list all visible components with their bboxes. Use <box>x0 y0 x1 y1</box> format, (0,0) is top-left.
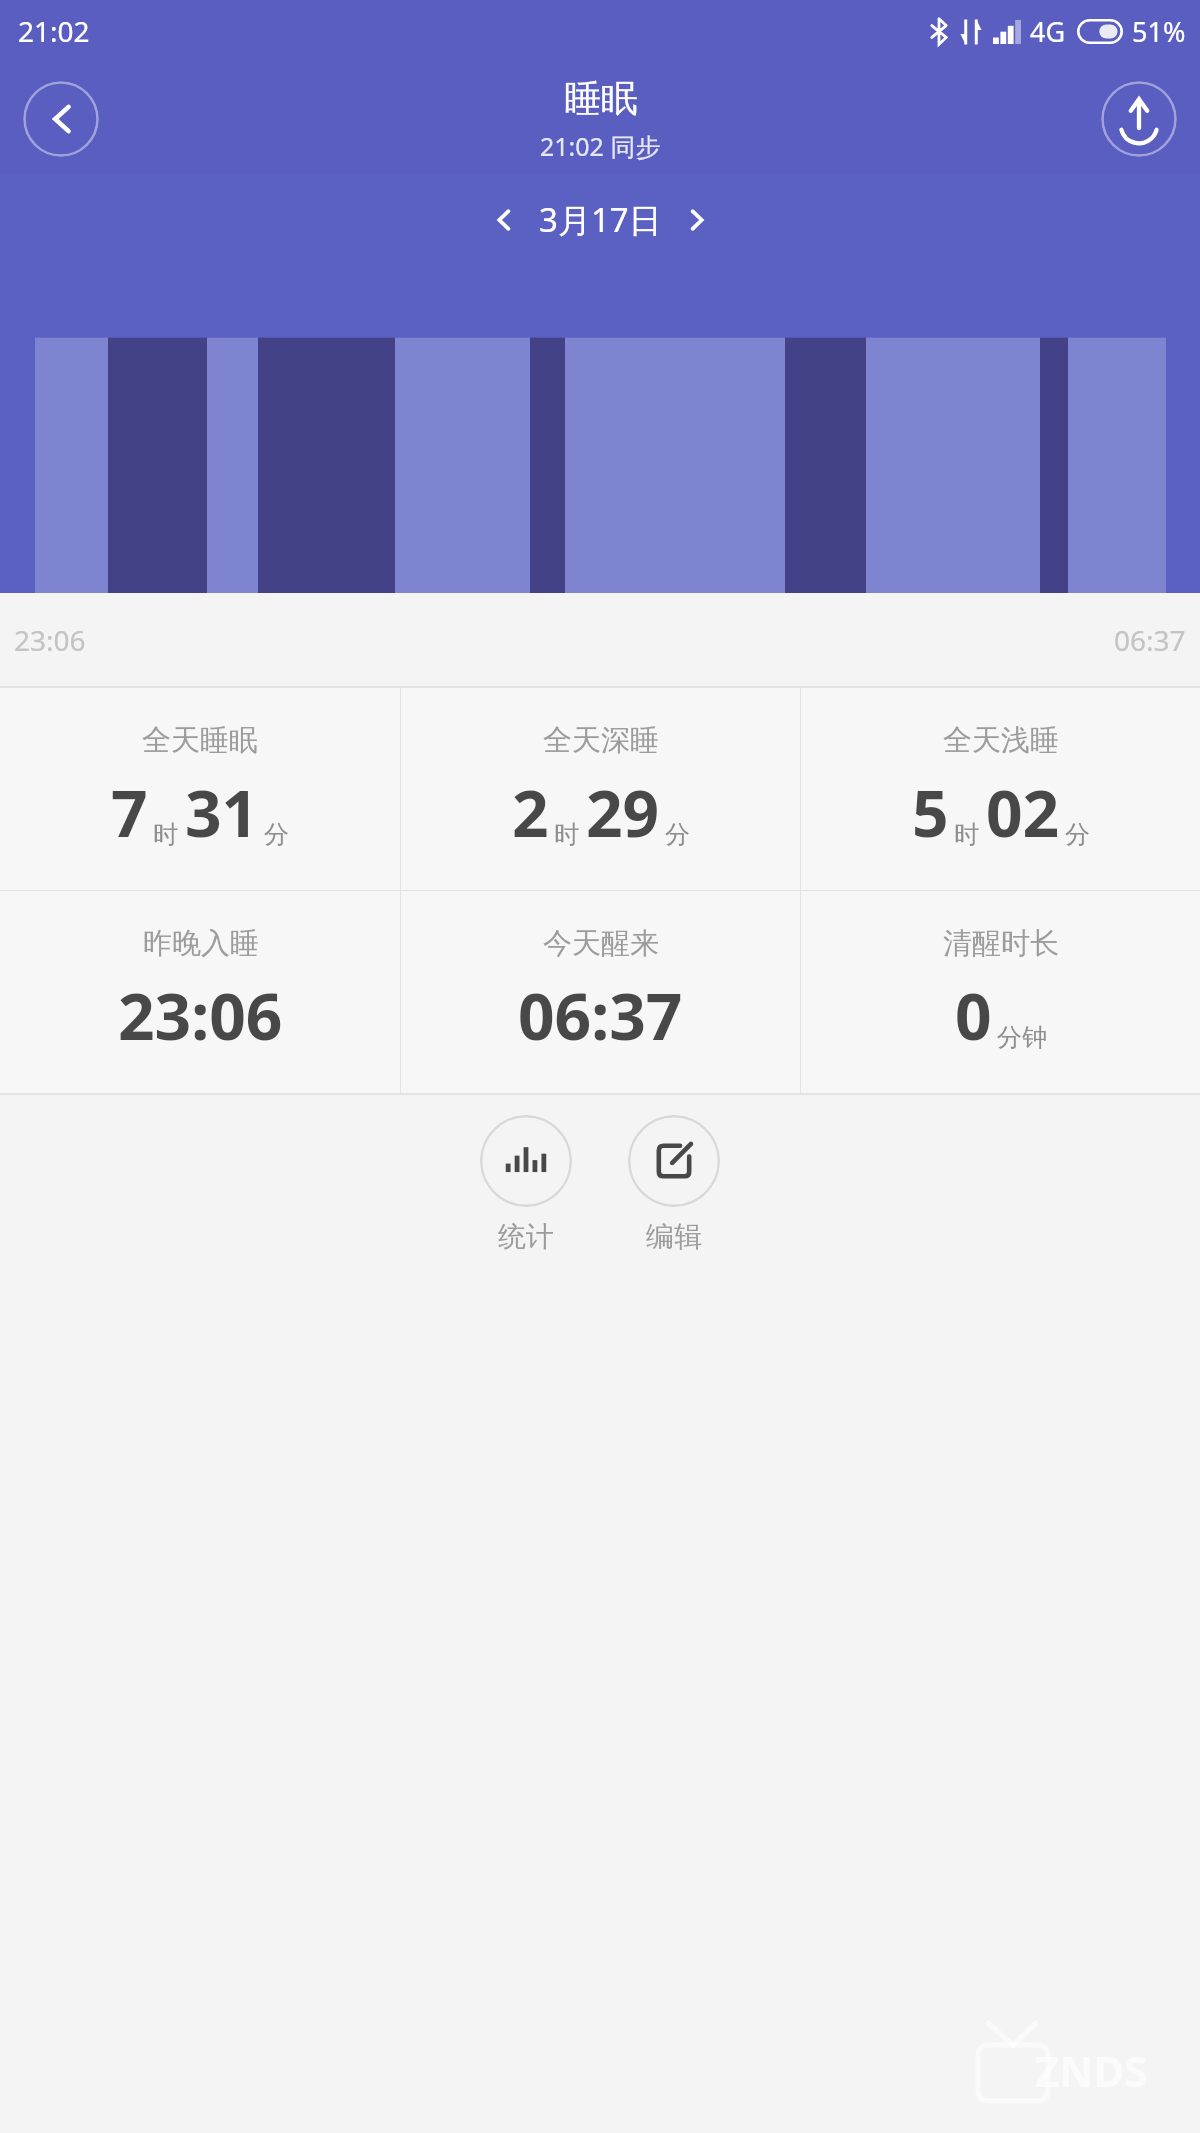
staticText: 29 <box>586 769 660 856</box>
staticText: 全天睡眠 <box>142 722 258 759</box>
button[interactable]: 全天睡眠 <box>0 688 400 890</box>
staticText: 0 <box>955 972 992 1059</box>
staticText: 23:06 <box>118 972 283 1059</box>
staticText: 3月17日 <box>539 197 662 242</box>
staticText: 7 <box>111 769 148 856</box>
staticText: 全天浅睡 <box>943 722 1059 759</box>
staticText: 睡眠 <box>564 75 638 122</box>
staticText: 清醒时长 <box>943 925 1059 962</box>
staticText: 31 <box>185 769 259 856</box>
staticText: 编辑 <box>646 1219 702 1254</box>
staticText: 分 <box>665 819 690 850</box>
button[interactable]: Edit <box>622 1115 726 1254</box>
staticText: 06:37 <box>1114 621 1186 659</box>
button[interactable]: 全天浅睡 <box>801 688 1200 890</box>
button[interactable]: 清醒时长 <box>801 891 1200 1093</box>
button[interactable]: Sync <box>1101 81 1177 157</box>
staticText: 时 <box>153 819 178 850</box>
staticText: 昨晚入睡 <box>143 925 259 962</box>
button[interactable]: Next day <box>676 198 720 242</box>
staticText: 分钟 <box>997 1022 1047 1053</box>
button[interactable]: 全天深睡 <box>401 688 800 890</box>
staticText: 51% <box>1132 13 1186 50</box>
button[interactable]: 今天醒来 <box>401 891 800 1093</box>
button[interactable]: Previous day <box>481 198 525 242</box>
staticText: 分 <box>264 819 289 850</box>
staticText: 21:02 同步 <box>540 129 661 163</box>
staticText: 统计 <box>498 1219 554 1254</box>
button[interactable]: 昨晚入睡 <box>0 891 400 1093</box>
staticText: 今天醒来 <box>543 925 659 962</box>
staticText: 21:02 <box>18 12 90 50</box>
button[interactable]: Statistics <box>474 1115 578 1254</box>
staticText: 时 <box>554 819 579 850</box>
staticText: 分 <box>1065 819 1090 850</box>
button[interactable]: Previous day <box>481 197 720 242</box>
staticText: 5 <box>912 769 949 856</box>
staticText: 23:06 <box>14 621 86 659</box>
staticText: 全天深睡 <box>543 722 659 759</box>
button[interactable]: Back <box>23 81 99 157</box>
staticText: 时 <box>954 819 979 850</box>
staticText: 02 <box>986 769 1060 856</box>
staticText: 2 <box>512 769 549 856</box>
staticText: 06:37 <box>518 972 683 1059</box>
staticText: 4G <box>1030 13 1066 50</box>
staticText: ZNDS <box>1035 2042 1148 2099</box>
